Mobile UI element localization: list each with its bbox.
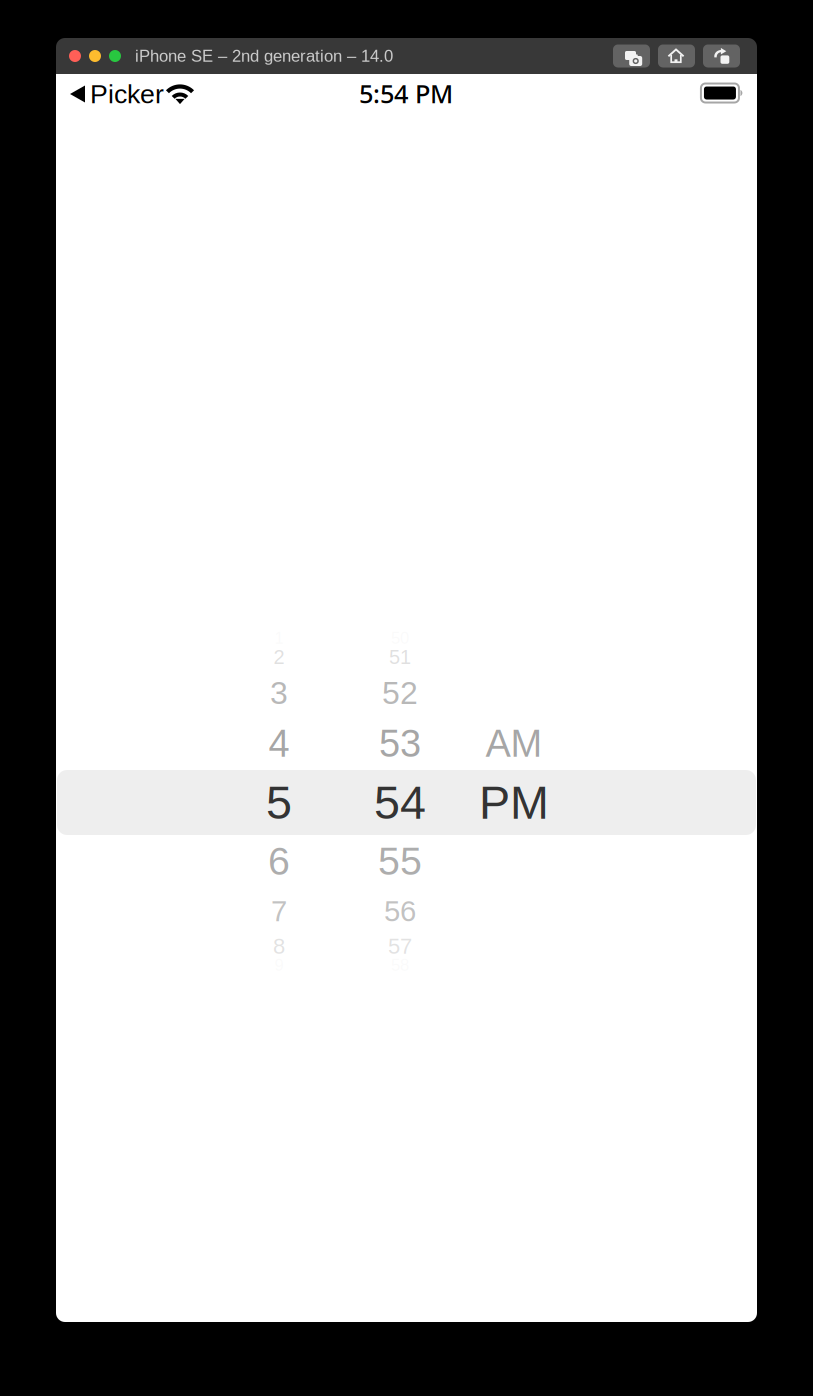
staticText: 8 [273, 934, 285, 958]
staticText: 55 [378, 839, 422, 883]
staticText: 52 [382, 675, 418, 711]
staticText: 51 [389, 646, 411, 668]
staticText: 54 [374, 776, 426, 828]
staticText: 2 [273, 646, 284, 668]
staticText: 5 [266, 776, 292, 828]
staticText: 57 [388, 934, 412, 958]
staticText: AM [485, 722, 542, 765]
staticText: 5:54 PM [359, 76, 453, 111]
staticText: iPhone SE – 2nd generation – 14.0 [135, 47, 393, 65]
staticText: Picker [90, 79, 164, 109]
staticText: 6 [268, 839, 290, 883]
staticText: 53 [379, 722, 421, 765]
button[interactable]: Home [658, 44, 695, 67]
staticText: 4 [268, 722, 289, 765]
staticText: 7 [271, 895, 287, 927]
button[interactable]: Rotate [703, 44, 740, 67]
staticText: 3 [270, 675, 288, 711]
staticText: 56 [384, 895, 416, 927]
staticText: PM [479, 776, 549, 828]
button[interactable]: Screenshot [613, 44, 650, 67]
button[interactable]: Picker [0, 79, 813, 109]
